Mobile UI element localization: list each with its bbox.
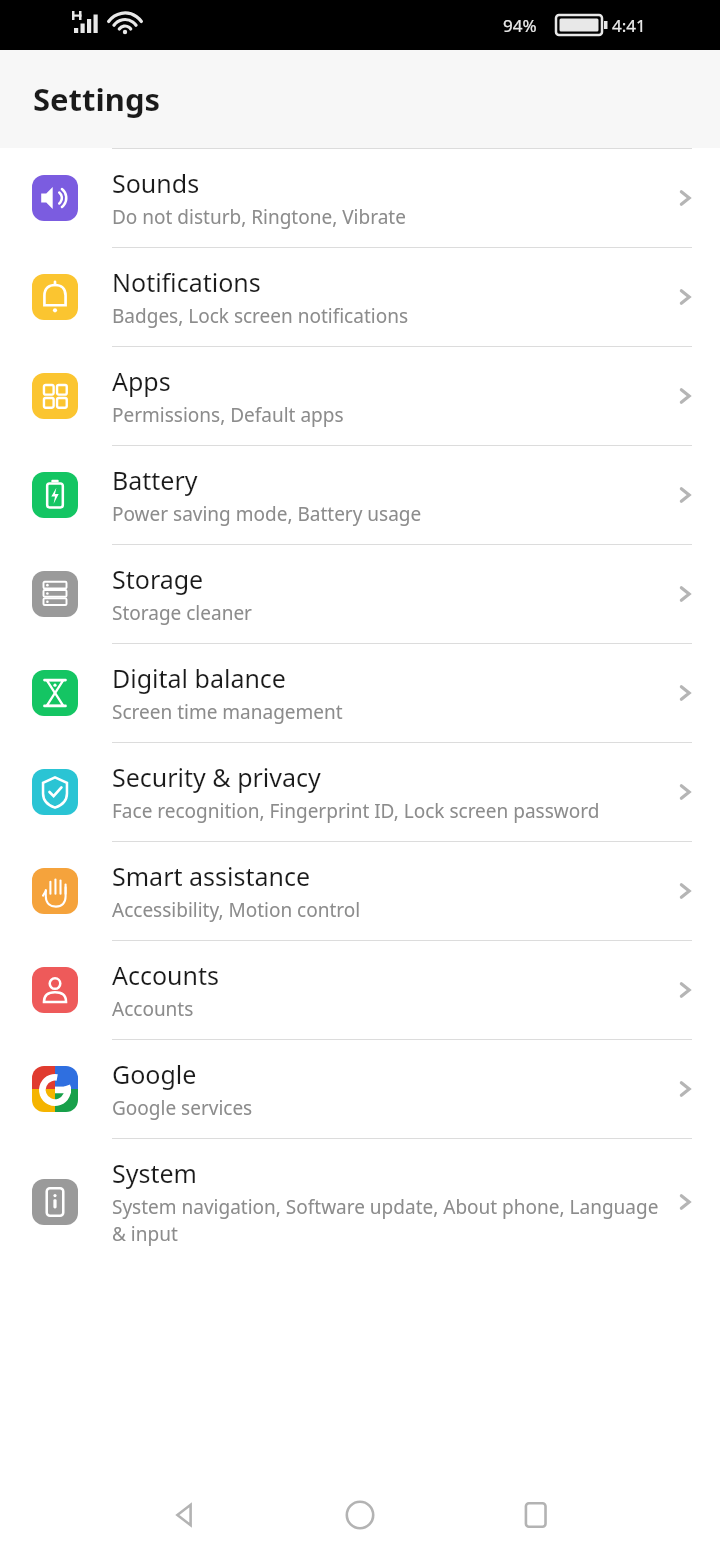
staticText: System navigation, Software update, Abou…: [112, 1194, 664, 1247]
staticText: 4:41: [612, 14, 646, 37]
staticText: Digital balance: [112, 661, 286, 695]
staticText: 94%: [503, 14, 537, 37]
button[interactable]: Google: [0, 1040, 720, 1138]
staticText: Apps: [112, 364, 171, 398]
button[interactable]: Recent apps: [508, 1487, 564, 1543]
staticText: Google services: [112, 1095, 253, 1121]
staticText: Settings: [33, 78, 161, 120]
button[interactable]: Smart assistance: [0, 842, 720, 940]
staticText: Sounds: [112, 166, 200, 200]
staticText: Storage cleaner: [112, 600, 252, 626]
button[interactable]: Digital balance: [0, 644, 720, 742]
button[interactable]: Security & privacy: [0, 743, 720, 841]
button[interactable]: Home: [332, 1487, 388, 1543]
staticText: Accounts: [112, 958, 220, 992]
staticText: Screen time management: [112, 699, 343, 725]
staticText: System: [112, 1156, 197, 1190]
staticText: Notifications: [112, 265, 261, 299]
button[interactable]: Notifications: [0, 248, 720, 346]
button[interactable]: Battery: [0, 446, 720, 544]
staticText: Storage: [112, 562, 204, 596]
button[interactable]: Storage: [0, 545, 720, 643]
button[interactable]: Back: [156, 1487, 212, 1543]
button[interactable]: Apps: [0, 347, 720, 445]
button[interactable]: Accounts: [0, 941, 720, 1039]
staticText: Badges, Lock screen notifications: [112, 303, 409, 329]
staticText: Permissions, Default apps: [112, 402, 344, 428]
staticText: Power saving mode, Battery usage: [112, 501, 422, 527]
staticText: Accounts: [112, 996, 194, 1022]
staticText: Do not disturb, Ringtone, Vibrate: [112, 204, 406, 230]
staticText: Accessibility, Motion control: [112, 897, 361, 923]
staticText: Face recognition, Fingerprint ID, Lock s…: [112, 798, 600, 824]
button[interactable]: Sounds: [0, 149, 720, 247]
staticText: Security & privacy: [112, 760, 321, 794]
staticText: Google: [112, 1057, 197, 1091]
staticText: Battery: [112, 463, 198, 497]
button[interactable]: System: [0, 1139, 720, 1264]
staticText: Smart assistance: [112, 859, 310, 893]
